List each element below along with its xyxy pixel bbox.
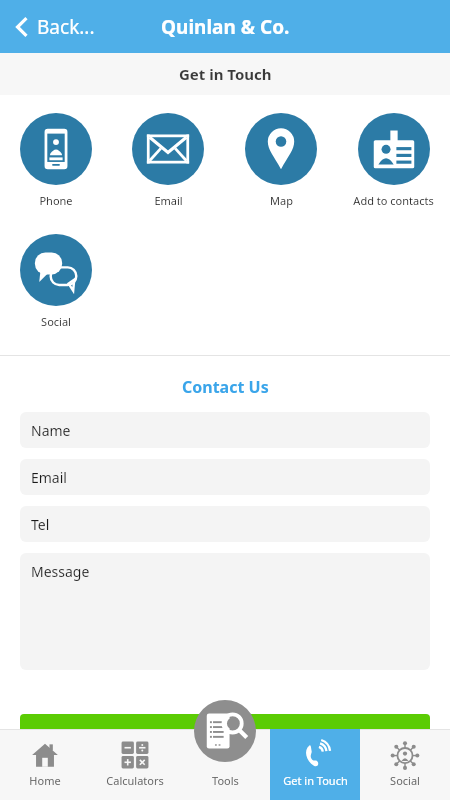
staticText: Email [31,468,67,487]
staticText: Tools [212,773,239,788]
staticText: Calculators [106,773,164,788]
staticText: Social [41,314,71,329]
button[interactable]: Social [360,729,450,800]
staticText: Add to contacts [353,193,434,208]
button[interactable]: Add to contacts [351,113,436,208]
button[interactable]: Tools [194,700,256,762]
staticText: Tel [31,515,50,534]
staticText: Message [31,562,90,581]
staticText: Quinlan & Co. [161,14,290,40]
button[interactable]: Calculators [90,729,180,800]
button[interactable]: Tools [180,729,270,800]
staticText: Get in Touch [179,64,272,84]
button[interactable]: Home [0,729,90,800]
button[interactable]: Email [130,113,206,208]
staticText: Back... [37,14,95,40]
button[interactable]: Map [243,113,319,208]
staticText: Map [270,193,293,208]
staticText: Phone [39,193,73,208]
button[interactable]: Back... [10,10,99,44]
button[interactable]: Phone [18,113,94,208]
staticText: Social [390,773,420,788]
staticText: Email [154,193,183,208]
staticText: Contact Us [182,376,269,398]
button[interactable]: Tel [20,506,430,542]
button[interactable]: Email [20,459,430,495]
button[interactable]: Name [20,412,430,448]
button[interactable]: Message [20,553,430,670]
button[interactable]: Social [18,234,94,329]
button[interactable] [20,714,430,754]
staticText: Name [31,421,71,440]
staticText: Get in Touch [283,773,348,788]
staticText: Home [29,773,61,788]
button[interactable]: Get in Touch [270,729,360,800]
